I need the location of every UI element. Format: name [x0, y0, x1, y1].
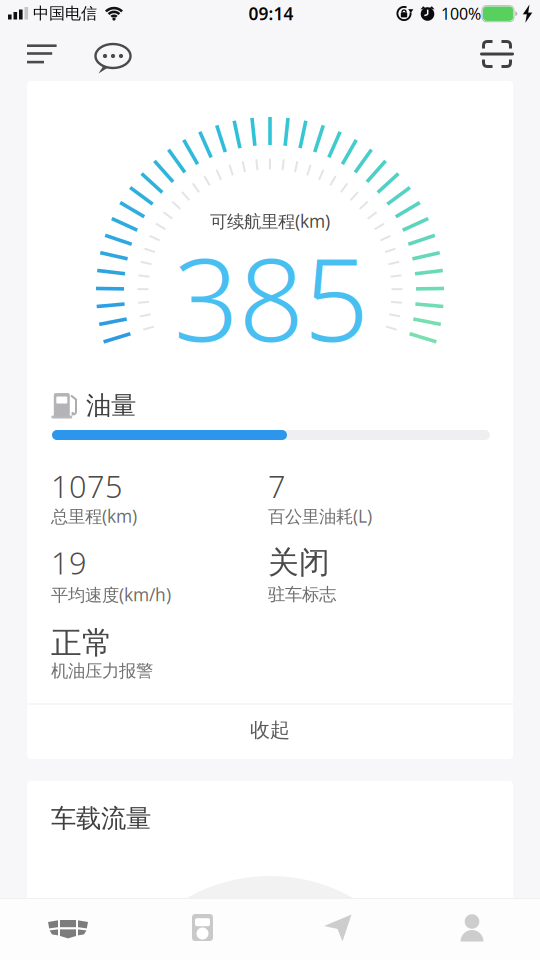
staticText: 机油压力报警: [51, 660, 153, 682]
staticText: 关闭: [268, 544, 330, 581]
staticText: 09:14: [248, 2, 293, 25]
staticText: 可续航里程(km): [210, 209, 330, 232]
staticText: 总里程(km): [51, 504, 137, 527]
staticText: 车载流量: [51, 803, 151, 834]
staticText: 收起: [250, 718, 290, 742]
staticText: 驻车标志: [268, 584, 336, 605]
staticText: 7: [268, 466, 286, 506]
staticText: 中国电信: [33, 4, 97, 23]
staticText: 百公里油耗(L): [268, 504, 372, 527]
staticText: 油量: [86, 390, 136, 421]
staticText: 100%: [441, 3, 481, 24]
staticText: 平均速度(km/h): [51, 583, 171, 606]
staticText: 385: [173, 221, 368, 373]
staticText: 正常: [51, 624, 113, 662]
staticText: 1075: [51, 466, 123, 506]
staticText: 19: [51, 542, 87, 583]
